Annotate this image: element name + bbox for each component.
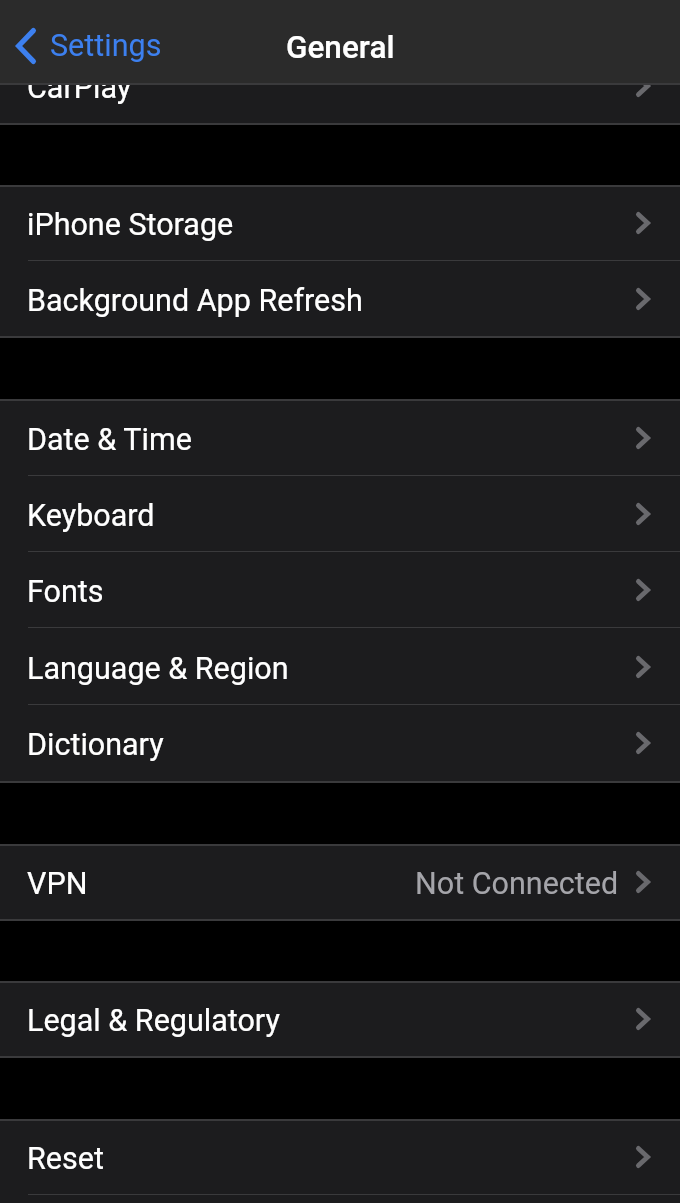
button[interactable]: Back to Settings [16, 28, 170, 64]
staticText: CarPlay [27, 70, 132, 106]
staticText: Reset [27, 1141, 104, 1177]
button[interactable]: Dictionary [0, 705, 680, 781]
button[interactable]: CarPlay [0, 48, 680, 124]
button[interactable]: Background App Refresh [0, 261, 680, 337]
button[interactable]: iPhone Storage [0, 185, 680, 261]
button[interactable]: Language & Region [0, 628, 680, 705]
staticText: Fonts [27, 574, 104, 610]
staticText: VPN [27, 866, 88, 902]
staticText: Settings [50, 28, 162, 64]
button[interactable]: Date & Time [0, 399, 680, 476]
staticText: iPhone Storage [27, 207, 234, 243]
staticText: Dictionary [27, 727, 164, 763]
button[interactable]: Keyboard [0, 476, 680, 552]
staticText: Language & Region [27, 651, 289, 687]
button[interactable]: VPN [0, 844, 680, 920]
staticText: Not Connected [415, 866, 619, 902]
staticText: Legal & Regulatory [27, 1003, 280, 1039]
button[interactable]: Reset [0, 1119, 680, 1195]
staticText: General [286, 29, 395, 66]
other: Back to Settings [16, 28, 36, 64]
staticText: Background App Refresh [27, 283, 363, 319]
staticText: Keyboard [27, 498, 155, 534]
button[interactable]: Fonts [0, 552, 680, 628]
staticText: Date & Time [27, 422, 192, 458]
button[interactable]: Legal & Regulatory [0, 981, 680, 1057]
